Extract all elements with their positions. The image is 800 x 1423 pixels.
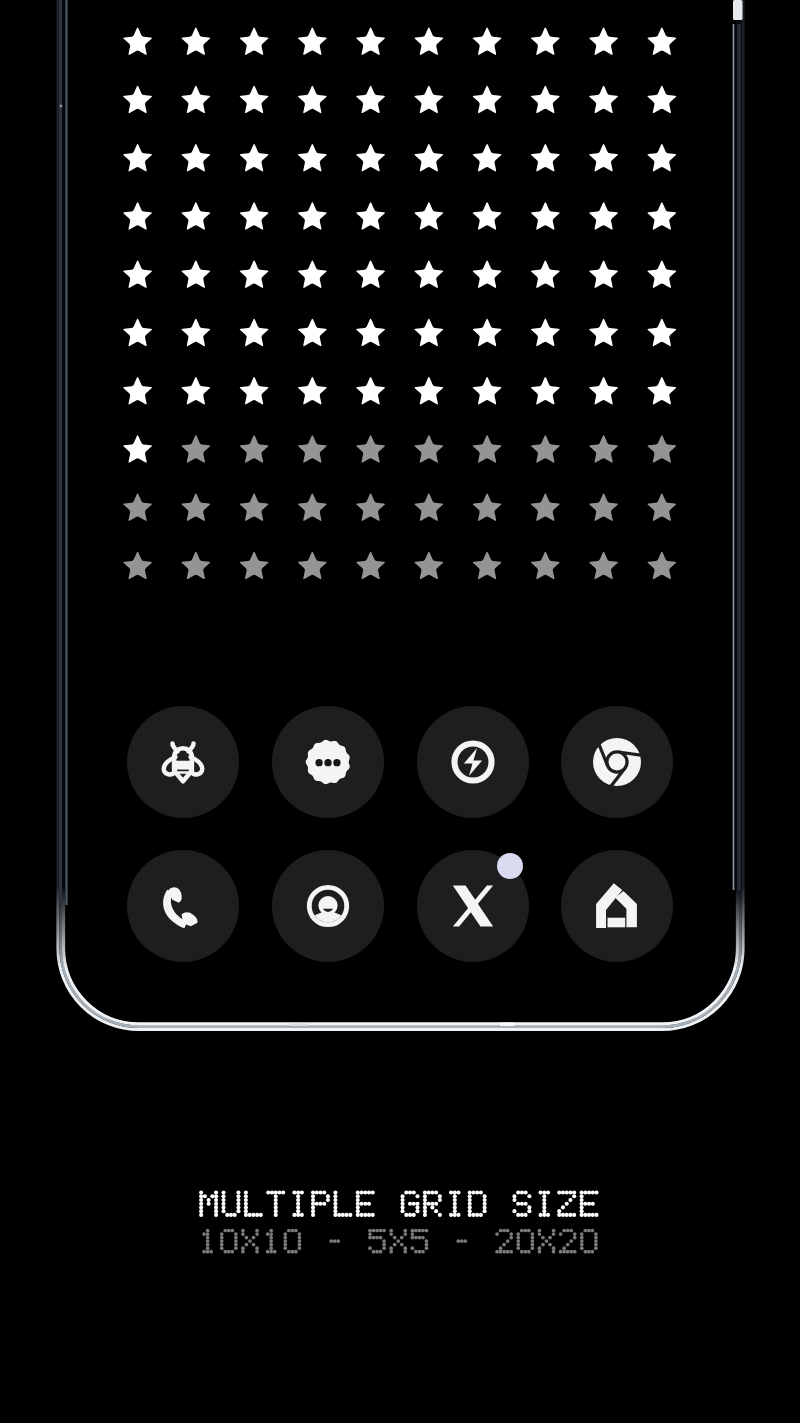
button[interactable]: Star grid widget, 71 percent xyxy=(108,13,692,597)
button[interactable]: Chrome xyxy=(561,706,673,818)
button[interactable]: Contacts xyxy=(272,850,384,962)
button[interactable]: Messages xyxy=(272,706,384,818)
button[interactable]: X xyxy=(417,850,529,962)
button[interactable]: Google Home xyxy=(561,850,673,962)
button[interactable]: Beeline xyxy=(127,706,239,818)
button[interactable]: Phone xyxy=(127,850,239,962)
button[interactable]: Power Shade xyxy=(417,706,529,818)
